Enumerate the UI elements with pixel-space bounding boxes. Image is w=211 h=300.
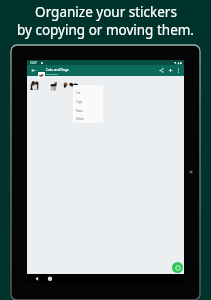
button[interactable]: Back	[28, 65, 39, 76]
button[interactable]: Add sticker	[165, 65, 176, 76]
staticText: Paste	[76, 109, 83, 113]
button[interactable]: New sticker pack	[172, 262, 183, 273]
staticText: Organize your stickers	[35, 3, 177, 21]
staticText: Cut	[76, 91, 81, 95]
button[interactable]: Sticker 1	[30, 80, 40, 91]
button[interactable]: Paste	[73, 106, 103, 115]
button[interactable]: Sticker 3	[63, 81, 78, 89]
staticText: 10:07	[30, 61, 37, 65]
button[interactable]: Share	[156, 65, 167, 76]
button[interactable]: More options	[173, 65, 184, 76]
staticText: Copy	[76, 100, 83, 104]
staticText: 54 stickers	[46, 72, 58, 75]
button[interactable]: Cut	[73, 88, 103, 97]
staticText: by copying or moving them.	[17, 21, 194, 39]
button[interactable]: Sticker 2	[50, 80, 57, 92]
staticText: Delete	[76, 117, 84, 121]
staticText: Cats and Dogs	[46, 67, 69, 71]
button[interactable]: Delete	[73, 115, 103, 123]
button[interactable]: Copy	[73, 97, 103, 106]
